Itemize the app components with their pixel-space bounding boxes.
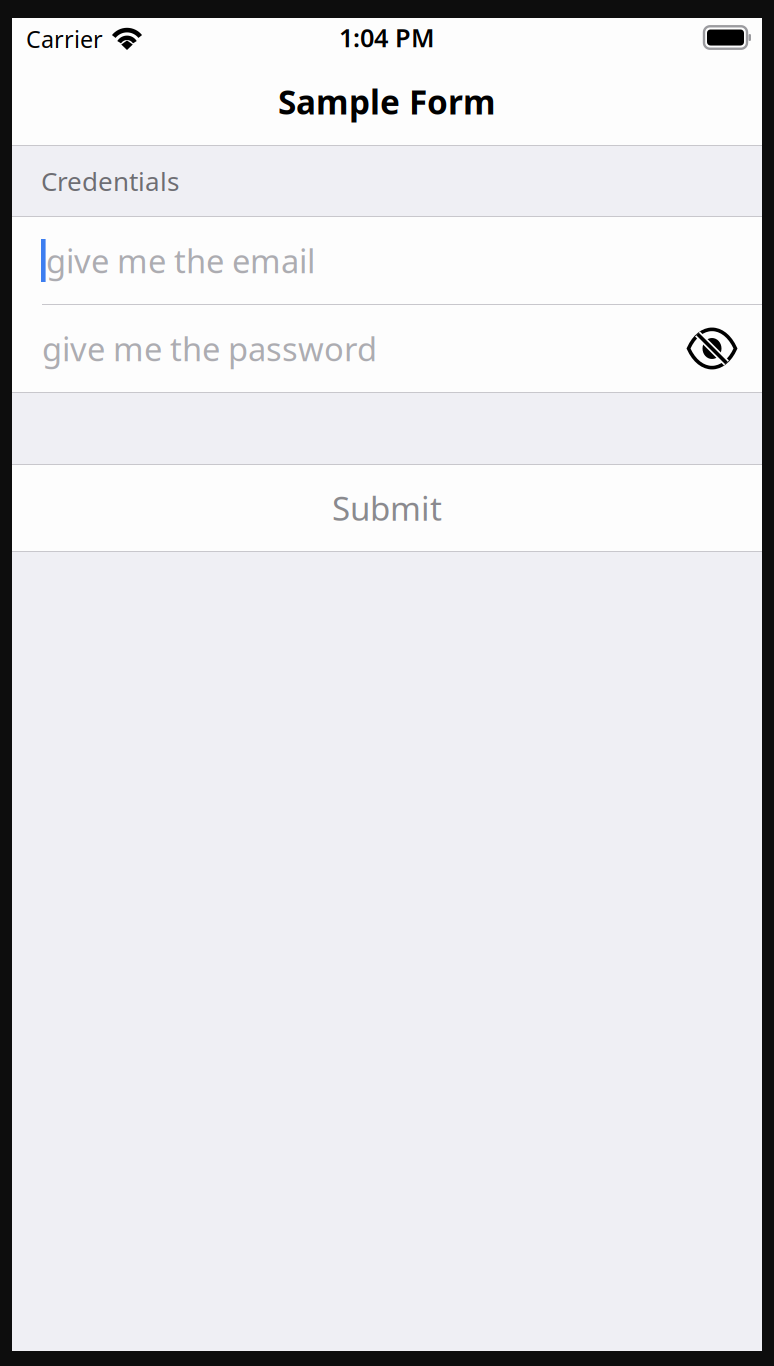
staticText: Submit — [332, 485, 442, 530]
staticText: Sample Form — [278, 79, 496, 124]
button[interactable]: Submit — [12, 465, 762, 551]
staticText: give me the email — [46, 238, 315, 283]
button[interactable]: give me the password — [12, 305, 762, 392]
staticText: give me the password — [42, 326, 377, 371]
button[interactable]: give me the email — [12, 217, 762, 304]
staticText: 1:04 PM — [339, 20, 435, 55]
staticText: Credentials — [41, 163, 179, 199]
staticText: Carrier — [26, 23, 103, 55]
